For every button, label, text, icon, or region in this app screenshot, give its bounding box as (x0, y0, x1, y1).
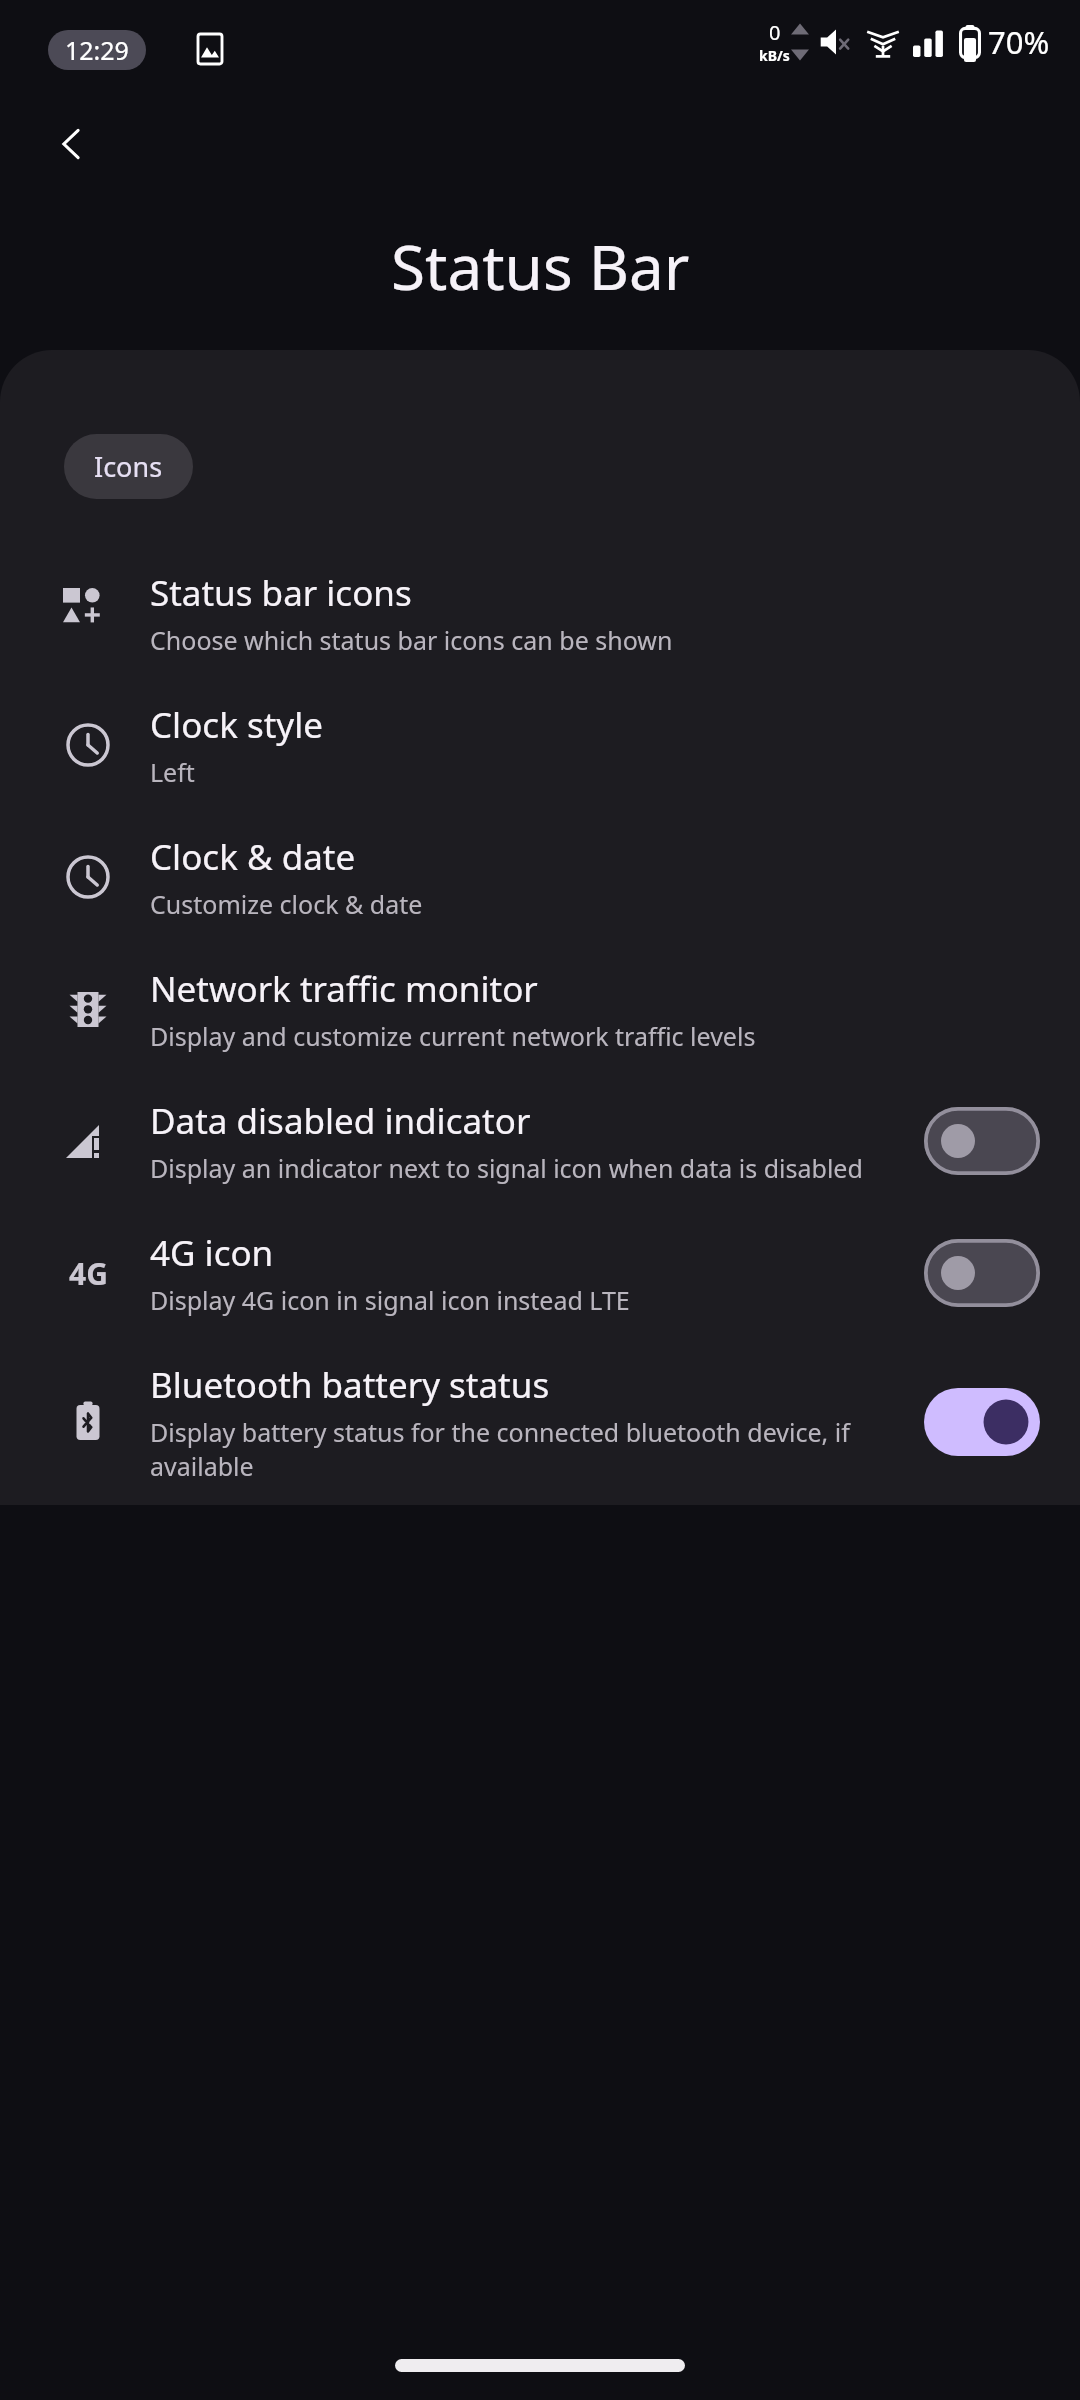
staticText: Icons (94, 448, 163, 485)
staticText: 4G (69, 1253, 108, 1294)
button[interactable]: Back (34, 106, 110, 182)
staticText: Left (150, 755, 195, 789)
button[interactable]: Network traffic monitor (0, 943, 1080, 1075)
staticText: Customize clock & date (150, 887, 423, 921)
staticText: 12:29 (65, 33, 129, 67)
staticText: Display battery status for the connected… (150, 1415, 908, 1483)
staticText: Clock & date (150, 833, 356, 881)
staticText: Clock style (150, 701, 323, 749)
button[interactable]: Data disabled indicator (0, 1075, 1080, 1207)
staticText: kB/s (759, 46, 790, 65)
button[interactable]: Clock & date (0, 811, 1080, 943)
button[interactable]: 4G (0, 1207, 1080, 1339)
staticText: Data disabled indicator (150, 1097, 531, 1145)
staticText: Status bar icons (150, 569, 412, 617)
staticText: 70% (988, 21, 1050, 63)
button[interactable]: Off (924, 1239, 1040, 1307)
staticText: 4G icon (150, 1229, 274, 1277)
staticText: Display and customize current network tr… (150, 1019, 756, 1053)
staticText: Network traffic monitor (150, 965, 538, 1013)
staticText: Display 4G icon in signal icon instead L… (150, 1283, 630, 1317)
staticText: 0 (769, 19, 781, 46)
button[interactable]: Status bar icons (0, 547, 1080, 679)
button[interactable]: On (924, 1388, 1040, 1456)
button[interactable]: Bluetooth battery status (0, 1339, 1080, 1505)
button[interactable]: Clock style (0, 679, 1080, 811)
button[interactable]: Off (924, 1107, 1040, 1175)
staticText: Status Bar (391, 224, 690, 308)
button[interactable]: Icons (64, 434, 193, 499)
staticText: Choose which status bar icons can be sho… (150, 623, 673, 657)
staticText: Display an indicator next to signal icon… (150, 1151, 863, 1185)
staticText: Bluetooth battery status (150, 1361, 550, 1409)
